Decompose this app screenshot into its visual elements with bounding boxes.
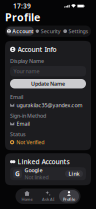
button[interactable]: Update Name	[10, 79, 86, 88]
staticText: Not Verified	[16, 139, 44, 146]
staticText: Home	[21, 197, 32, 202]
button[interactable]: Home	[17, 190, 37, 202]
staticText: Profile	[63, 197, 75, 202]
button[interactable]: Security	[34, 27, 62, 36]
staticText: Linked Accounts	[18, 157, 70, 166]
button[interactable]: Account	[6, 27, 34, 36]
staticText: Update Name	[31, 80, 65, 87]
staticText: Email	[10, 93, 23, 101]
button[interactable]: Link	[65, 170, 83, 177]
button[interactable]: Profile	[59, 190, 79, 202]
button[interactable]: Settings	[62, 27, 90, 36]
staticText: Link	[68, 170, 79, 177]
staticText: Status	[10, 131, 26, 138]
staticText: Google	[24, 167, 42, 174]
staticText: G	[15, 169, 20, 178]
staticText: Security	[41, 28, 61, 35]
staticText: Profile	[5, 10, 40, 24]
staticText: Account Info	[18, 45, 57, 54]
staticText: Ask AI	[42, 197, 54, 202]
staticText: Email	[16, 120, 29, 127]
staticText: Display Name	[10, 57, 44, 64]
staticText: Sign-in Method	[10, 112, 46, 119]
button[interactable]: Ask AI	[38, 190, 58, 202]
staticText: Your name	[13, 68, 39, 75]
staticText: Account	[12, 28, 33, 35]
staticText: Not linked	[24, 174, 48, 181]
staticText: ugurakilac35@yandex.com	[16, 101, 82, 109]
staticText: Settings	[69, 28, 89, 35]
staticText: 17:39	[13, 2, 31, 10]
